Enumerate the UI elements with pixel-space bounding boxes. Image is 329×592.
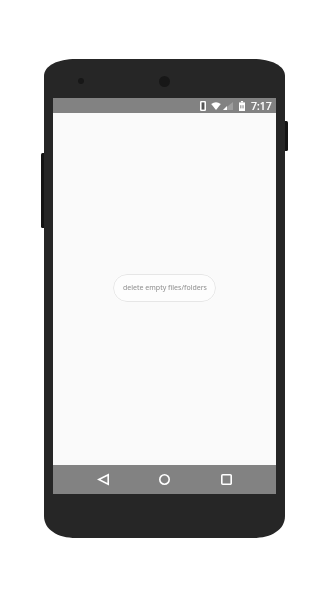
button[interactable]: Recents: [206, 465, 246, 494]
button[interactable]: delete empty files/folders: [113, 274, 216, 302]
staticText: delete empty files/folders: [123, 283, 207, 293]
staticText: 7:17: [251, 99, 272, 113]
button[interactable]: Home: [144, 465, 184, 494]
button[interactable]: Back: [83, 465, 123, 494]
